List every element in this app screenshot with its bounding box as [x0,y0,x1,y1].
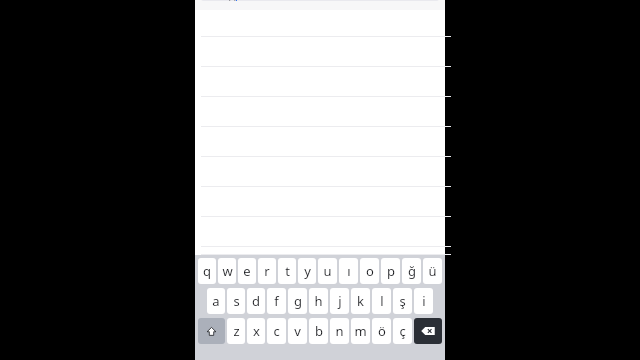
button[interactable] [195,97,445,127]
staticText: f [274,292,279,310]
staticText: ç [399,322,406,340]
button[interactable]: j [330,288,349,314]
staticText: b [315,322,323,340]
button[interactable]: z [227,318,245,344]
staticText: p [387,262,395,280]
button[interactable] [195,247,445,255]
staticText: z [233,322,240,340]
button[interactable]: c [267,318,286,344]
staticText: s [233,292,240,310]
button[interactable]: a [207,288,225,314]
button[interactable]: b [309,318,328,344]
button[interactable]: ğ [402,258,421,284]
staticText: r [264,262,270,280]
staticText: ı [347,262,351,280]
staticText: m [354,322,367,340]
button[interactable]: n [330,318,349,344]
staticText: i [422,292,426,310]
button[interactable]: u [318,258,337,284]
button[interactable]: p [381,258,400,284]
staticText: ğ [408,262,416,280]
staticText: intigq [214,0,236,1]
button[interactable]: i [414,288,433,314]
button[interactable]: intigq [200,0,440,1]
button[interactable]: g [288,288,307,314]
button[interactable]: k [351,288,370,314]
staticText: d [252,292,260,310]
staticText: w [222,262,233,280]
button[interactable] [195,67,445,97]
button[interactable]: Backspace [414,318,442,344]
button[interactable] [195,10,445,37]
button[interactable]: y [298,258,316,284]
button[interactable] [195,157,445,187]
button[interactable] [195,37,445,67]
staticText: n [335,322,344,340]
button[interactable]: l [372,288,391,314]
button[interactable]: h [309,288,328,314]
button[interactable]: m [351,318,370,344]
staticText: g [294,292,302,310]
button[interactable]: x [247,318,265,344]
staticText: e [243,262,251,280]
staticText: ö [378,322,386,340]
button[interactable]: Shift [198,318,225,344]
button[interactable]: ş [393,288,412,314]
staticText: a [212,292,220,310]
button[interactable]: ü [423,258,442,284]
button[interactable]: o [360,258,379,284]
staticText: l [380,292,384,310]
staticText: o [366,262,374,280]
button[interactable]: ö [372,318,391,344]
staticText: q [203,262,211,280]
button[interactable]: r [258,258,276,284]
button[interactable]: d [247,288,265,314]
staticText: j [338,292,342,310]
button[interactable]: w [218,258,236,284]
staticText: v [294,322,301,340]
button[interactable]: t [278,258,296,284]
button[interactable] [195,217,445,247]
staticText: y [304,262,311,280]
button[interactable]: q [198,258,216,284]
button[interactable]: f [267,288,286,314]
staticText: ş [399,292,406,310]
button[interactable] [195,127,445,157]
staticText: u [323,262,332,280]
button[interactable]: v [288,318,307,344]
button[interactable] [195,187,445,217]
staticText: k [357,292,364,310]
staticText: t [285,262,290,280]
button[interactable]: s [227,288,245,314]
button[interactable]: ı [339,258,358,284]
button[interactable]: ç [393,318,412,344]
button[interactable]: e [238,258,256,284]
staticText: ü [428,262,437,280]
staticText: x [253,322,260,340]
staticText: h [314,292,323,310]
staticText: c [273,322,280,340]
